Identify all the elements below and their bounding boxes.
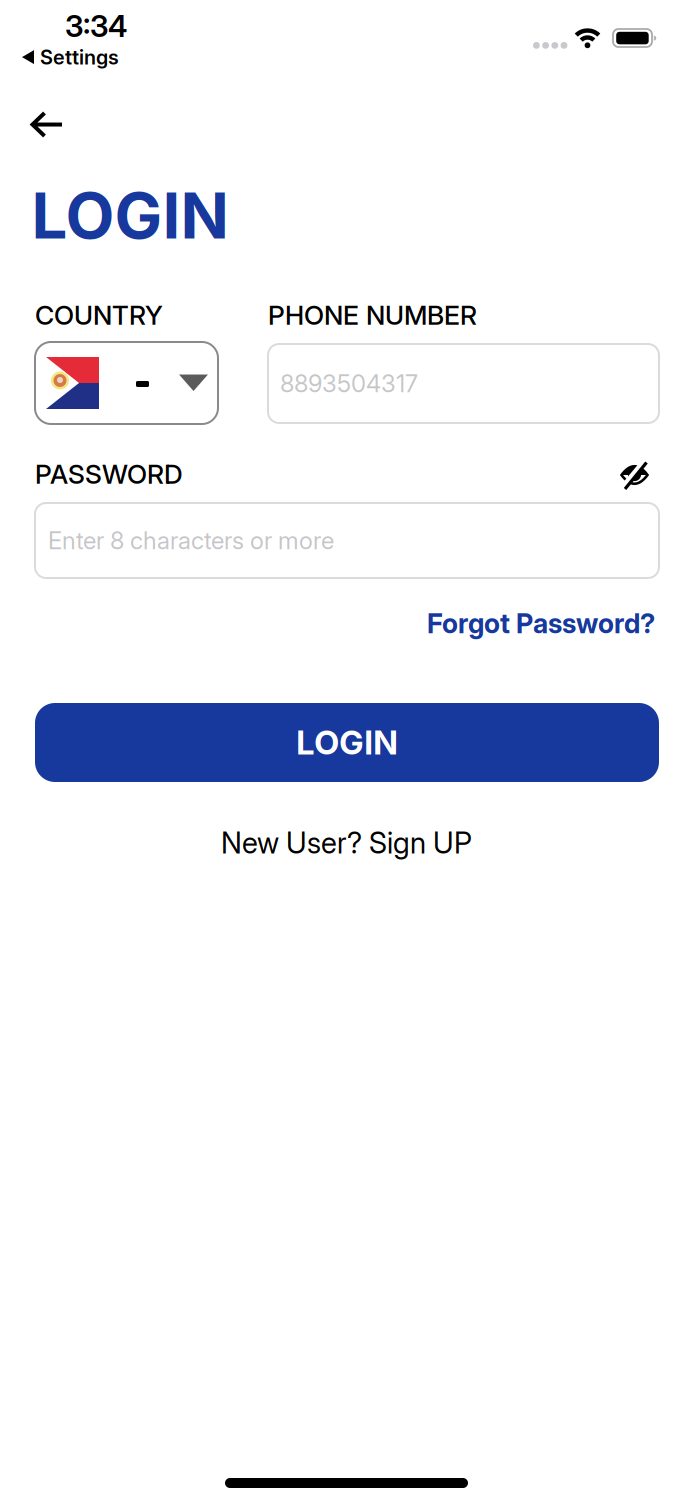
staticText: New User? Sign UP xyxy=(221,825,472,861)
staticText: LOGIN xyxy=(296,722,398,762)
staticText: PHONE NUMBER xyxy=(268,299,477,331)
staticText: Forgot Password? xyxy=(427,607,655,640)
button[interactable]: 8893504317 xyxy=(268,344,659,423)
button[interactable]: LOGIN xyxy=(35,703,659,782)
staticText: Enter 8 characters or more xyxy=(48,526,334,555)
staticText: COUNTRY xyxy=(35,299,163,331)
staticText: PASSWORD xyxy=(35,458,183,490)
button[interactable]: Settings xyxy=(22,45,119,69)
staticText: 8893504317 xyxy=(280,369,418,398)
button[interactable]: Enter 8 characters or more xyxy=(35,503,659,578)
staticText: LOGIN xyxy=(31,177,228,254)
button[interactable] xyxy=(614,456,655,495)
staticText: Settings xyxy=(40,45,119,69)
button[interactable]: Forgot Password? xyxy=(427,607,655,640)
button[interactable] xyxy=(22,103,71,146)
staticText: 3:34 xyxy=(65,8,127,44)
button[interactable]: New User? Sign UP xyxy=(0,823,693,863)
button[interactable] xyxy=(35,342,218,424)
